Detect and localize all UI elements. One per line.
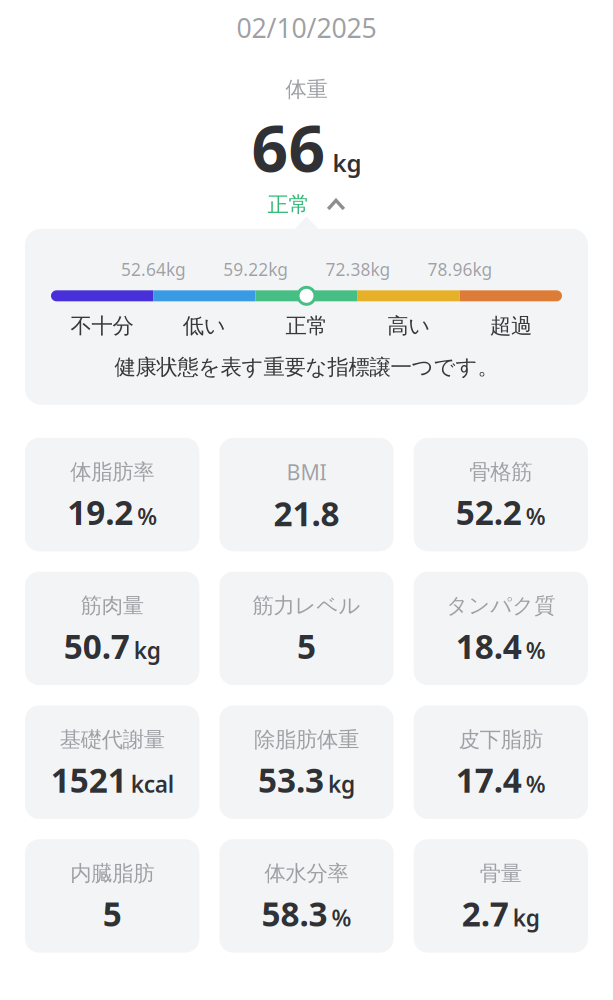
button[interactable]: 骨量 — [414, 839, 588, 953]
staticText: 52.64kg — [121, 258, 186, 281]
staticText: 正常 — [285, 313, 327, 339]
staticText: 18.4 — [456, 624, 522, 668]
staticText: kg — [513, 903, 540, 933]
staticText: 体重 — [285, 76, 327, 103]
staticText: 59.22kg — [223, 258, 288, 281]
staticText: 正常 — [267, 192, 309, 218]
staticText: 体脂肪率 — [70, 459, 154, 485]
staticText: 不十分 — [71, 313, 134, 339]
staticText: % — [137, 501, 157, 531]
button[interactable]: 基礎代謝量 — [25, 705, 199, 819]
staticText: % — [526, 635, 546, 665]
staticText: BMI — [286, 458, 326, 486]
button[interactable]: 正常 — [267, 190, 345, 218]
staticText: 58.3 — [261, 891, 327, 936]
staticText: 17.4 — [456, 758, 522, 802]
staticText: 高い — [387, 313, 430, 339]
staticText: kcal — [131, 769, 174, 799]
staticText: 皮下脂肪 — [459, 726, 543, 753]
staticText: 健康状態を表す重要な指標譲一つです。 — [114, 354, 498, 380]
staticText: 1521 — [51, 758, 127, 802]
staticText: kg — [328, 769, 355, 799]
staticText: 50.7 — [64, 624, 130, 668]
button[interactable]: 筋力レベル — [219, 572, 394, 685]
staticText: 内臓脂肪 — [70, 860, 154, 886]
staticText: 5 — [103, 891, 122, 936]
staticText: 2.7 — [462, 891, 509, 936]
staticText: 66 — [251, 105, 325, 190]
button[interactable]: 筋肉量 — [25, 572, 199, 685]
staticText: 骨量 — [480, 860, 522, 886]
staticText: 5 — [297, 624, 316, 668]
staticText: 78.96kg — [428, 258, 493, 281]
staticText: 低い — [183, 313, 226, 339]
staticText: 骨格筋 — [469, 459, 532, 485]
staticText: 53.3 — [258, 758, 324, 802]
button[interactable]: 皮下脂肪 — [414, 705, 588, 819]
button[interactable]: タンパク質 — [414, 572, 588, 685]
staticText: タンパク質 — [446, 593, 555, 619]
staticText: 72.38kg — [325, 258, 390, 281]
button[interactable]: 体水分率 — [219, 839, 394, 953]
staticText: 超過 — [490, 313, 532, 339]
staticText: % — [526, 501, 546, 531]
button[interactable]: 体脂肪率 — [25, 438, 199, 551]
staticText: 除脂肪体重 — [254, 726, 359, 753]
staticText: 筋力レベル — [252, 593, 360, 619]
button[interactable]: BMI — [219, 438, 394, 551]
button[interactable]: 骨格筋 — [414, 438, 588, 551]
staticText: 21.8 — [273, 491, 339, 535]
staticText: 基礎代謝量 — [60, 726, 165, 753]
staticText: kg — [332, 147, 361, 179]
staticText: 体水分率 — [264, 860, 348, 886]
button[interactable]: 除脂肪体重 — [219, 705, 394, 819]
staticText: % — [526, 769, 546, 799]
staticText: % — [331, 903, 351, 933]
staticText: 19.2 — [67, 490, 133, 534]
staticText: kg — [134, 635, 161, 665]
staticText: 52.2 — [456, 490, 522, 534]
staticText: 筋肉量 — [81, 593, 144, 619]
button[interactable]: 内臓脂肪 — [25, 839, 199, 953]
staticText: 02/10/2025 — [236, 10, 376, 45]
